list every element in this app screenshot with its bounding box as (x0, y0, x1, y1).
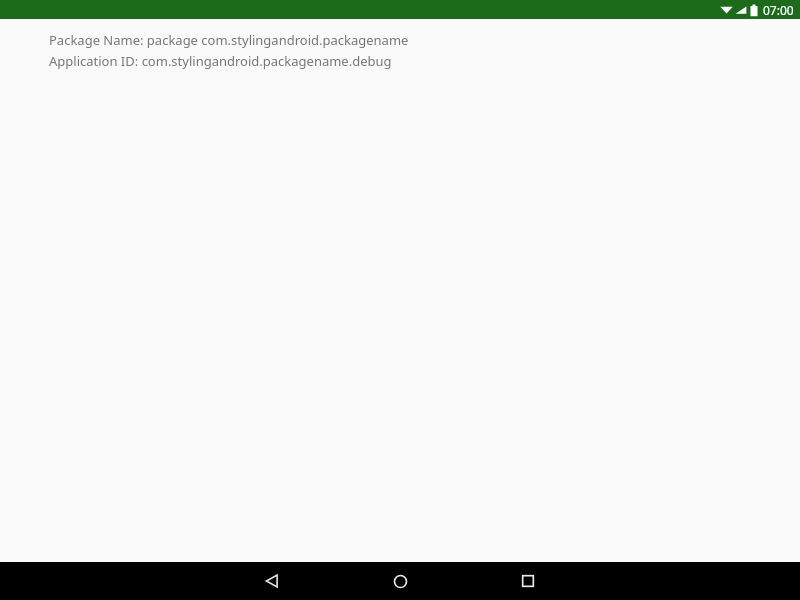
staticText: 07:00 (763, 2, 794, 18)
button[interactable]: Home (336, 562, 464, 600)
staticText: Package Name: package com.stylingandroid… (49, 31, 409, 49)
button[interactable]: Back (208, 562, 336, 600)
button[interactable]: Recent apps (464, 562, 592, 600)
staticText: Application ID: com.stylingandroid.packa… (49, 52, 392, 70)
